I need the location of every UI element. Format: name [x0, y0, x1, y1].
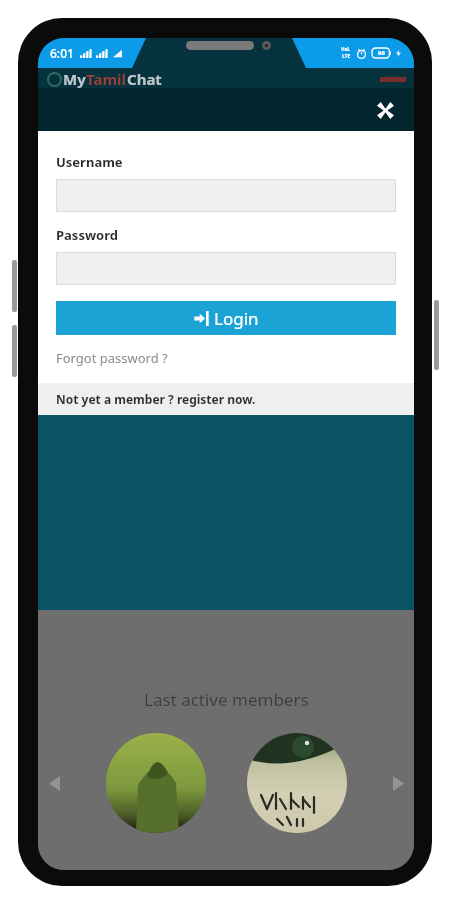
button[interactable]: Close	[370, 95, 400, 125]
staticText: My	[63, 69, 86, 89]
staticText: Login	[214, 307, 259, 330]
button[interactable]: Login	[56, 301, 396, 335]
button[interactable]: Text input	[56, 179, 396, 212]
button[interactable]: Next	[388, 773, 408, 793]
button[interactable]: Sign in with Google Plus	[202, 166, 251, 215]
staticText: VoL	[341, 46, 351, 53]
staticText: Forgot password ?	[56, 349, 168, 367]
button[interactable]: Not yet a member ? register now.	[38, 383, 414, 415]
staticText: Password	[56, 226, 118, 244]
staticText: 66	[378, 49, 385, 57]
button[interactable]: Not yet a member ? register now.	[113, 241, 340, 268]
button[interactable]: Text input	[56, 252, 396, 285]
staticText: Not yet a member ? register now.	[117, 245, 336, 264]
button[interactable]: Previous	[44, 773, 64, 793]
staticText: G	[215, 176, 231, 205]
staticText: Chat	[127, 69, 162, 89]
button[interactable]: Forgot password ?	[56, 349, 168, 367]
staticText: 6:01	[50, 45, 74, 61]
staticText: Not yet a member ? register now.	[56, 391, 256, 407]
button[interactable]: Member profile	[247, 733, 347, 833]
staticText: Last active members	[144, 688, 309, 711]
staticText: LTE	[342, 53, 351, 60]
button[interactable]: Member profile	[106, 733, 206, 833]
staticText: Username	[56, 153, 123, 171]
staticText: Tamil	[86, 69, 127, 89]
